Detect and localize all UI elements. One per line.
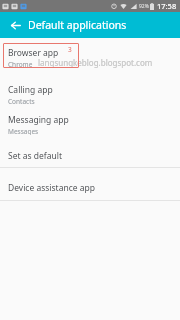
button[interactable]: Set as default bbox=[0, 145, 180, 167]
staticText: Device assistance app bbox=[8, 182, 95, 194]
staticText: Calling app bbox=[8, 84, 53, 96]
staticText: Browser app bbox=[8, 47, 59, 59]
staticText: Chrome bbox=[8, 60, 33, 68]
staticText: Messages bbox=[8, 127, 39, 135]
button[interactable]: Browser app bbox=[0, 44, 180, 68]
staticText: Contacts bbox=[8, 97, 35, 105]
button[interactable]: Device assistance app bbox=[0, 177, 180, 199]
staticText: 3 bbox=[68, 45, 72, 54]
button[interactable]: Calling app bbox=[0, 81, 180, 105]
button[interactable]: Messaging app bbox=[0, 111, 180, 135]
staticText: 92% bbox=[139, 3, 149, 10]
staticText: Messaging app bbox=[8, 114, 69, 126]
staticText: 17:58 bbox=[157, 1, 177, 11]
staticText: langsungkeblog.blogspot.com bbox=[38, 57, 153, 68]
button[interactable]: Navigate up bbox=[5, 15, 25, 35]
staticText: Set as default bbox=[8, 150, 63, 162]
staticText: Default applications bbox=[28, 18, 127, 32]
